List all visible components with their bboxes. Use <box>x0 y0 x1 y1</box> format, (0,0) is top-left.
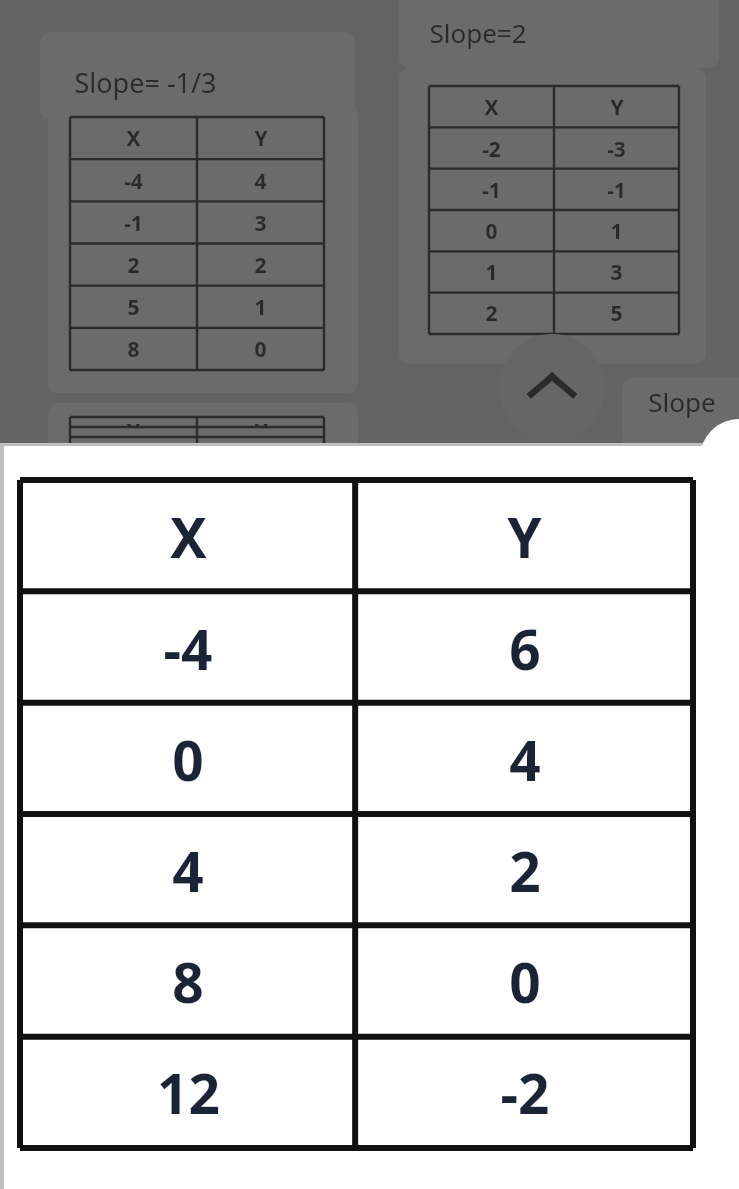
staticText: -1 <box>482 176 501 205</box>
staticText: 2 <box>127 251 140 280</box>
staticText: 0 <box>172 722 204 797</box>
button[interactable]: Slope= -1/3 <box>40 32 355 120</box>
staticText: 12 <box>157 1055 220 1130</box>
staticText: -2 <box>500 1055 550 1130</box>
staticText: 3 <box>254 209 267 238</box>
staticText: -4 <box>163 611 213 686</box>
staticText: -4 <box>124 167 143 196</box>
button[interactable]: Slope <box>622 378 739 448</box>
staticText: 1 <box>485 258 498 287</box>
staticText: 8 <box>127 335 140 364</box>
staticText: Y <box>507 499 542 574</box>
staticText: Slope=2 <box>429 15 527 50</box>
staticText: 1 <box>610 217 623 246</box>
staticText: Slope= -1/3 <box>74 64 217 101</box>
staticText: Y <box>610 93 624 122</box>
staticText: 4 <box>172 833 204 908</box>
staticText: 6 <box>509 611 541 686</box>
button[interactable]: Slope=2 <box>399 0 719 68</box>
staticText: 0 <box>485 217 498 246</box>
staticText: Y <box>254 124 268 153</box>
staticText: Slope <box>648 384 716 419</box>
staticText: -1 <box>124 209 143 238</box>
staticText: 2 <box>509 833 541 908</box>
button[interactable]: Scroll up <box>499 334 605 440</box>
staticText: -2 <box>482 135 501 164</box>
staticText: -1 <box>607 176 626 205</box>
staticText: 3 <box>610 258 623 287</box>
staticText: -3 <box>607 135 626 164</box>
staticText: 4 <box>509 722 541 797</box>
staticText: X <box>126 124 141 153</box>
staticText: 5 <box>610 299 623 328</box>
button[interactable]: X <box>48 105 358 393</box>
staticText: 5 <box>127 293 140 322</box>
staticText: X <box>126 417 141 427</box>
button[interactable]: X <box>48 403 358 463</box>
staticText: 0 <box>509 944 541 1019</box>
staticText: 0 <box>254 335 267 364</box>
staticText: 2 <box>485 299 498 328</box>
staticText: 1 <box>254 293 267 322</box>
staticText: X <box>484 93 499 122</box>
staticText: Y <box>254 417 268 427</box>
button[interactable]: More <box>700 419 739 497</box>
button[interactable]: X <box>399 68 706 364</box>
staticText: X <box>170 499 207 574</box>
staticText: 8 <box>172 944 204 1019</box>
staticText: 2 <box>254 251 267 280</box>
button[interactable]: X <box>20 480 693 1148</box>
staticText: 4 <box>254 167 267 196</box>
